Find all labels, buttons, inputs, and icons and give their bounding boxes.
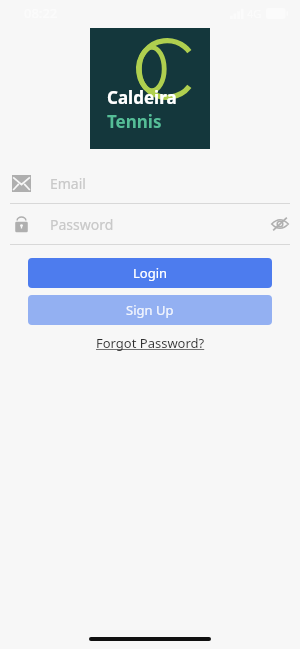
- button[interactable]: Sign Up: [28, 295, 272, 325]
- button[interactable]: Email: [0, 163, 300, 203]
- staticText: Forgot Password?: [96, 334, 205, 352]
- button[interactable]: Forgot Password?: [88, 331, 213, 355]
- other: Email: [12, 175, 31, 192]
- button[interactable]: Show password: [266, 210, 294, 238]
- staticText: Password: [50, 215, 114, 234]
- staticText: Login: [133, 264, 168, 282]
- button[interactable]: Login: [28, 258, 272, 288]
- staticText: Caldeira: [107, 86, 177, 109]
- other: Password: [12, 216, 31, 233]
- staticText: Tennis: [107, 110, 162, 133]
- staticText: Sign Up: [126, 301, 174, 319]
- staticText: Email: [50, 174, 86, 193]
- button[interactable]: Password: [0, 204, 300, 244]
